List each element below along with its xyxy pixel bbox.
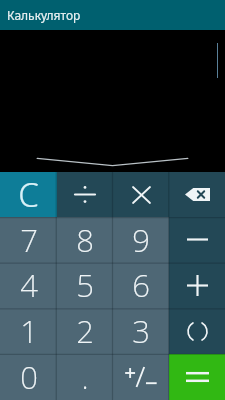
button[interactable]: 3 [113, 308, 169, 354]
button[interactable]: 4 [0, 262, 57, 308]
button[interactable]: Minus [169, 217, 225, 262]
staticText: 4 [20, 264, 38, 306]
staticText: 9 [132, 219, 150, 261]
button[interactable]: 9 [113, 217, 169, 262]
staticText: . [81, 356, 89, 398]
button[interactable]: Plus minus [113, 354, 169, 400]
button[interactable]: 2 [57, 308, 113, 354]
staticText: 6 [132, 264, 150, 306]
button[interactable]: . [57, 354, 113, 400]
staticText: 3 [132, 310, 150, 352]
staticText: 1 [20, 310, 38, 352]
button[interactable]: Plus [169, 262, 225, 308]
staticText: 2 [76, 310, 94, 352]
button[interactable]: 5 [57, 262, 113, 308]
button[interactable]: Backspace [169, 172, 225, 217]
staticText: Калькулятор [7, 7, 81, 23]
button[interactable]: Divide [57, 172, 113, 217]
staticText: 0 [20, 356, 38, 398]
button[interactable]: Parentheses [169, 308, 225, 354]
staticText: 5 [76, 264, 94, 306]
button[interactable]: 7 [0, 217, 57, 262]
button[interactable]: Equals [169, 354, 225, 400]
button[interactable]: 8 [57, 217, 113, 262]
button[interactable]: 6 [113, 262, 169, 308]
staticText: 8 [76, 219, 94, 261]
staticText: C [18, 172, 39, 217]
button[interactable]: Multiply [113, 172, 169, 217]
staticText: 7 [20, 219, 38, 261]
button[interactable]: C [0, 172, 57, 217]
button[interactable]: 1 [0, 308, 57, 354]
button[interactable]: 0 [0, 354, 57, 400]
